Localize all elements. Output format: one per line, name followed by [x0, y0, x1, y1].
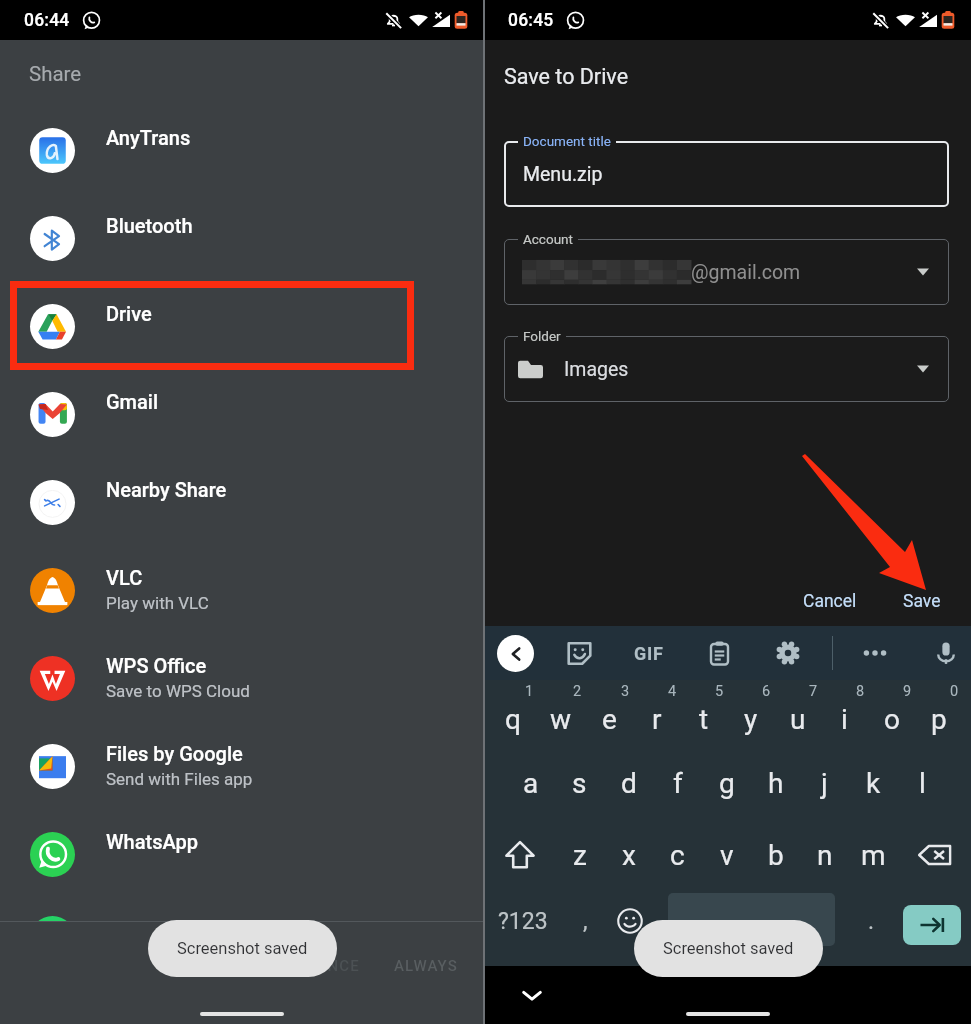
- staticText: Files by Google: [106, 742, 243, 765]
- staticText: s: [572, 767, 587, 800]
- staticText: v: [720, 839, 734, 872]
- button[interactable]: k: [849, 750, 898, 816]
- button[interactable]: Shift: [484, 834, 556, 876]
- button[interactable]: d: [604, 750, 653, 816]
- button[interactable]: VLC: [0, 546, 484, 634]
- button[interactable]: b: [751, 834, 800, 876]
- staticText: GIF: [634, 643, 664, 664]
- button[interactable]: ALWAYS: [380, 949, 472, 983]
- button[interactable]: 2: [537, 680, 585, 750]
- button[interactable]: 7: [774, 680, 821, 750]
- button[interactable]: m: [849, 834, 898, 876]
- button[interactable]: g: [702, 750, 751, 816]
- button[interactable]: 9: [868, 680, 915, 750]
- staticText: 3: [621, 683, 630, 700]
- staticText: Screenshot saved: [177, 939, 308, 958]
- staticText: JUST ONCE: [271, 957, 360, 975]
- button[interactable]: Cancel: [789, 582, 871, 621]
- button[interactable]: Files by Google: [0, 722, 484, 810]
- staticText: a: [523, 767, 539, 800]
- staticText: 2: [573, 683, 582, 700]
- staticText: Save to WPS Cloud: [106, 681, 250, 701]
- button[interactable]: Clipboard: [698, 626, 740, 680]
- staticText: Cancel: [803, 591, 857, 612]
- button[interactable]: n: [800, 834, 849, 876]
- staticText: i: [841, 703, 848, 736]
- staticText: 0: [950, 683, 959, 700]
- button[interactable]: Enter: [903, 905, 961, 945]
- staticText: VLC: [106, 566, 143, 589]
- button[interactable]: Menu.zip: [504, 141, 949, 207]
- staticText: Document title: [523, 133, 611, 149]
- staticText: Folder: [523, 328, 561, 344]
- button[interactable]: c: [653, 834, 702, 876]
- staticText: Send with Files app: [106, 769, 253, 789]
- staticText: Account: [523, 231, 573, 247]
- staticText: 4: [668, 683, 677, 700]
- button[interactable]: 8: [821, 680, 868, 750]
- button[interactable]: Backspace: [898, 834, 971, 876]
- button[interactable]: Images: [504, 336, 949, 402]
- button[interactable]: WPS Office: [0, 634, 484, 722]
- staticText: Nearby Share: [106, 478, 227, 501]
- staticText: r: [652, 703, 662, 736]
- staticText: Play with VLC: [106, 593, 209, 613]
- staticText: g: [719, 767, 735, 800]
- button[interactable]: Space: [668, 893, 835, 946]
- button[interactable]: x: [604, 834, 653, 876]
- button[interactable]: Voice input: [925, 626, 967, 680]
- staticText: AnyTrans: [106, 126, 191, 149]
- button[interactable]: 0: [915, 680, 962, 750]
- button[interactable]: 1: [489, 680, 537, 750]
- staticText: o: [884, 703, 900, 736]
- button[interactable]: Gmail: [0, 370, 484, 458]
- staticText: e: [602, 703, 617, 736]
- staticText: WhatsApp: [106, 830, 198, 853]
- button[interactable]: 3: [585, 680, 633, 750]
- button[interactable]: f: [653, 750, 702, 816]
- staticText: 06:45: [508, 10, 554, 31]
- button[interactable]: Bluetooth: [0, 194, 484, 282]
- button[interactable]: ?123: [484, 876, 562, 966]
- staticText: h: [768, 767, 784, 800]
- staticText: n: [817, 839, 833, 872]
- staticText: Gmail: [106, 390, 159, 413]
- button[interactable]: Back: [497, 635, 534, 672]
- button[interactable]: l: [898, 750, 947, 816]
- staticText: Save to Drive: [504, 64, 629, 89]
- button[interactable]: More options: [854, 626, 896, 680]
- button[interactable]: Emoji: [608, 876, 652, 966]
- button[interactable]: JUST ONCE: [257, 949, 374, 983]
- staticText: 6: [762, 683, 771, 700]
- staticText: Save: [903, 591, 941, 612]
- button[interactable]: 5: [680, 680, 727, 750]
- button[interactable]: .: [848, 876, 894, 966]
- staticText: 06:44: [24, 10, 70, 31]
- button[interactable]: s: [555, 750, 604, 816]
- button[interactable]: Save: [889, 582, 955, 621]
- button[interactable]: WhatsApp: [0, 810, 484, 898]
- button[interactable]: @gmail.com: [504, 239, 949, 305]
- button[interactable]: Drive: [0, 282, 484, 370]
- button[interactable]: AnyTrans: [0, 106, 484, 194]
- staticText: WPS Office: [106, 654, 207, 677]
- button[interactable]: Settings: [767, 626, 809, 680]
- button[interactable]: Stickers: [558, 626, 600, 680]
- button[interactable]: a: [507, 750, 555, 816]
- staticText: f: [673, 767, 683, 800]
- button[interactable]: h: [751, 750, 800, 816]
- button[interactable]: 4: [633, 680, 680, 750]
- staticText: x: [622, 839, 636, 872]
- staticText: 7: [809, 683, 818, 700]
- button[interactable]: z: [556, 834, 604, 876]
- staticText: .: [868, 908, 875, 935]
- staticText: 9: [903, 683, 912, 700]
- button[interactable]: v: [702, 834, 751, 876]
- button[interactable]: GIF: [627, 626, 671, 680]
- other: Hide keyboard: [519, 982, 545, 1008]
- button[interactable]: ,: [562, 876, 608, 966]
- staticText: Share: [29, 62, 82, 86]
- button[interactable]: 6: [727, 680, 774, 750]
- button[interactable]: j: [800, 750, 849, 816]
- button[interactable]: Nearby Share: [0, 458, 484, 546]
